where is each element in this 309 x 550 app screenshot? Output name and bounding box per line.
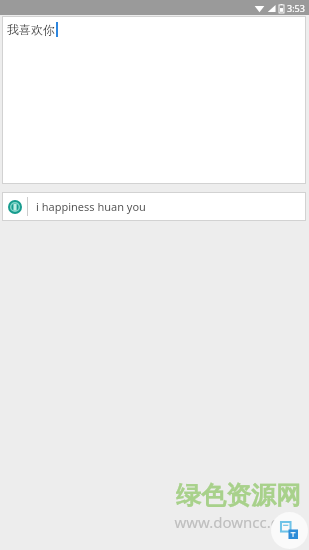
button[interactable]: i happiness huan you bbox=[2, 192, 306, 221]
button[interactable]: 我喜欢你 bbox=[2, 16, 306, 184]
staticText: 3:53 bbox=[287, 2, 305, 14]
staticText: i happiness huan you bbox=[36, 199, 146, 214]
staticText: www.downcc.com bbox=[174, 512, 301, 532]
staticText: 我喜欢你 bbox=[7, 22, 55, 37]
staticText: 绿色资源网 bbox=[176, 480, 301, 511]
button[interactable]: Translate bbox=[271, 512, 308, 549]
